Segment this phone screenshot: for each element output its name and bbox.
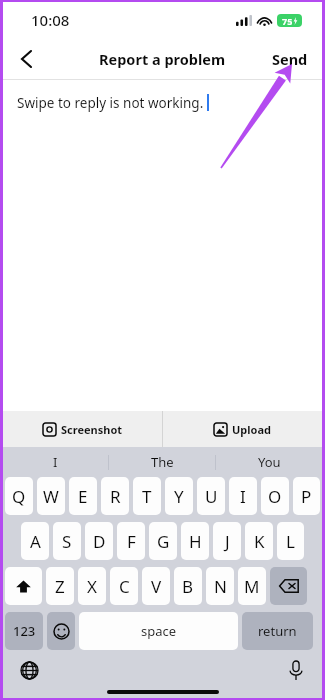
button[interactable]: T [133,477,161,515]
staticText: Screenshot [61,422,123,437]
button[interactable]: M [238,567,266,605]
button[interactable]: K [245,522,273,560]
staticText: B [182,575,194,598]
button[interactable]: N [206,567,234,605]
staticText: F [127,530,136,553]
button[interactable]: Backspace [270,567,307,605]
staticText: R [110,485,121,508]
staticText: T [142,485,152,508]
button[interactable]: F [117,522,145,560]
button[interactable]: Screenshot [3,411,162,447]
button[interactable]: A [21,522,49,560]
button[interactable]: X [78,567,106,605]
staticText: U [205,485,218,508]
staticText: J [225,530,230,553]
button[interactable]: The [109,447,215,477]
button[interactable]: 123 [5,612,43,650]
staticText: C [119,575,130,598]
button[interactable]: P [293,477,320,515]
button[interactable]: Z [46,567,74,605]
staticText: N [214,575,227,598]
staticText: 10:08 [31,10,70,30]
staticText: V [151,575,162,598]
button[interactable]: R [101,477,129,515]
staticText: H [189,530,202,553]
staticText: I [53,453,58,471]
staticText: K [254,530,265,553]
button[interactable]: I [3,447,108,477]
staticText: The [151,453,174,471]
staticText: Send [272,49,308,69]
button[interactable]: J [213,522,241,560]
staticText: 123 [13,622,36,640]
button[interactable]: V [142,567,170,605]
staticText: Report a problem [99,49,226,69]
button[interactable]: G [149,522,177,560]
button[interactable]: W [37,477,65,515]
button[interactable]: D [85,522,113,560]
staticText: G [157,530,170,553]
button[interactable]: I [229,477,257,515]
staticText: Swipe to reply is not working. [17,94,204,112]
button[interactable]: L [277,522,304,560]
button[interactable]: Change keyboard [15,656,43,684]
button[interactable]: S [53,522,81,560]
staticText: Y [174,485,184,508]
staticText: W [43,485,59,508]
button[interactable]: B [174,567,202,605]
button[interactable]: U [197,477,225,515]
staticText: O [268,485,282,508]
staticText: L [286,530,295,553]
button[interactable]: E [69,477,97,515]
staticText: E [78,485,88,508]
staticText: Upload [232,422,271,437]
staticText: return [258,622,297,640]
staticText: Z [55,575,65,598]
staticText: Q [12,485,26,508]
button[interactable]: C [110,567,138,605]
staticText: 75 [282,15,293,27]
staticText: S [62,530,72,553]
staticText: D [93,530,106,553]
button[interactable]: Back [9,42,43,76]
button[interactable]: Y [165,477,193,515]
staticText: P [301,485,312,508]
button[interactable]: O [261,477,289,515]
staticText: X [87,575,97,598]
staticText: A [30,530,41,553]
staticText: space [141,622,177,640]
staticText: M [244,575,260,598]
staticText: I [240,485,246,508]
button[interactable]: Shift [5,567,42,605]
button[interactable]: space [79,612,238,650]
button[interactable]: You [216,447,322,477]
button[interactable]: Dictation [282,656,310,684]
button[interactable]: H [181,522,209,560]
button[interactable]: Upload [163,411,322,447]
staticText: You [258,453,281,471]
button[interactable]: Emoji [47,612,75,650]
button[interactable]: return [242,612,313,650]
button[interactable]: Send [258,41,322,77]
button[interactable]: Q [5,477,33,515]
